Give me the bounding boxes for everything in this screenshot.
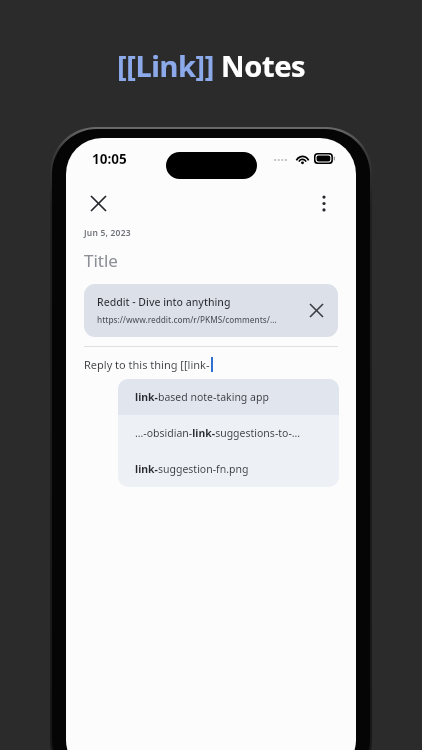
- staticText: [[Link]] Notes: [117, 46, 306, 85]
- button[interactable]: Remove link: [300, 294, 332, 326]
- button[interactable]: More options: [306, 185, 342, 221]
- button[interactable]: …-obsidian-link-suggestions-to-…: [118, 415, 339, 451]
- button[interactable]: Reddit - Dive into anything: [84, 284, 338, 337]
- staticText: Reply to this thing [[link-: [84, 357, 210, 372]
- staticText: https://www.reddit.com/r/PKMS/comments/…: [97, 314, 277, 325]
- staticText: Title: [84, 249, 118, 272]
- staticText: Jun 5, 2023: [84, 227, 131, 239]
- staticText: link-based note-taking app: [135, 390, 269, 404]
- button[interactable]: link-suggestion-fn.png: [118, 451, 339, 487]
- staticText: …-obsidian-link-suggestions-to-…: [135, 426, 301, 440]
- staticText: Reddit - Dive into anything: [97, 295, 231, 309]
- button[interactable]: Close: [80, 185, 116, 221]
- staticText: link-suggestion-fn.png: [135, 462, 249, 476]
- staticText: 10:05: [92, 150, 127, 168]
- button[interactable]: link-based note-taking app: [118, 379, 339, 415]
